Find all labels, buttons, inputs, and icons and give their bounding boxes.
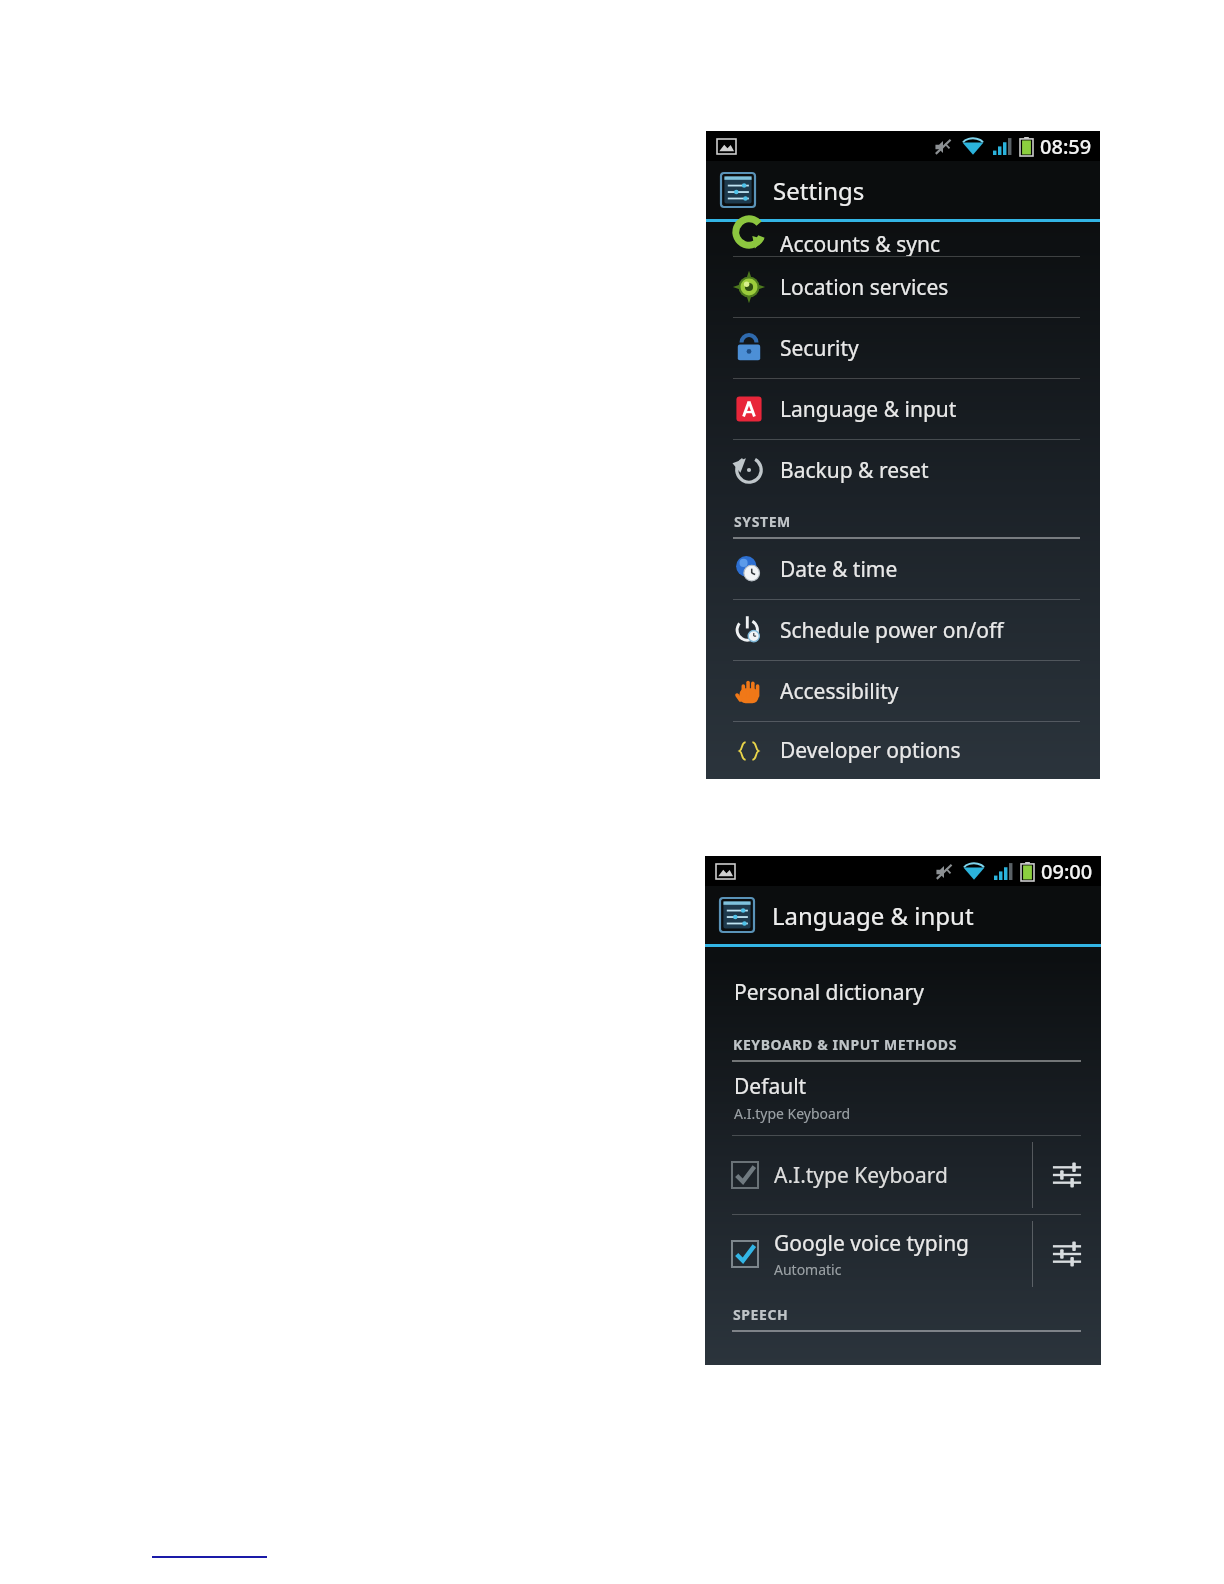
button[interactable]: Accessibility [706, 661, 1100, 721]
button[interactable]: Backup & reset [706, 440, 1100, 500]
staticText: Schedule power on/off [780, 616, 1004, 645]
staticText: Location services [780, 273, 949, 302]
staticText: Accessibility [780, 677, 899, 706]
staticText: Security [780, 334, 859, 363]
staticText: 09:00 [1041, 858, 1093, 885]
staticText: Settings [773, 174, 865, 207]
staticText: SPEECH [733, 1305, 789, 1324]
button[interactable]: Security [706, 318, 1100, 378]
staticText: Date & time [780, 555, 898, 584]
staticText: KEYBOARD & INPUT METHODS [733, 1035, 957, 1054]
staticText: SYSTEM [734, 512, 791, 531]
button[interactable]: Settings [706, 161, 1100, 219]
staticText: Language & input [772, 899, 974, 932]
button[interactable]: Schedule power on/off [706, 600, 1100, 660]
button[interactable]: A.I.type Keyboard [705, 1136, 1032, 1214]
button[interactable]: Settings for A.I.type Keyboard [1033, 1136, 1101, 1214]
button[interactable]: Date & time [706, 539, 1100, 599]
staticText: Google voice typing [774, 1229, 970, 1258]
staticText: A.I.type Keyboard [734, 1104, 851, 1123]
staticText: Automatic [774, 1260, 842, 1279]
button[interactable]: Developer options [706, 722, 1100, 779]
staticText: Default [734, 1072, 807, 1101]
button[interactable]: Accounts & sync [706, 222, 1100, 256]
button[interactable]: Language & input [706, 379, 1100, 439]
button[interactable]: Personal dictionary [705, 961, 1101, 1023]
button[interactable]: Location services [706, 257, 1100, 317]
staticText: Personal dictionary [734, 978, 924, 1007]
staticText: Backup & reset [780, 456, 929, 485]
button[interactable]: Language & input [705, 886, 1101, 944]
button[interactable]: Default [705, 1062, 1101, 1135]
button[interactable]: Google voice typing [705, 1215, 1032, 1293]
button[interactable]: Settings for Google voice typing [1033, 1215, 1101, 1293]
staticText: A.I.type Keyboard [774, 1161, 949, 1190]
staticText: Accounts & sync [780, 230, 940, 256]
staticText: 08:59 [1040, 133, 1092, 160]
staticText: Language & input [780, 395, 957, 424]
staticText: Developer options [780, 736, 961, 765]
